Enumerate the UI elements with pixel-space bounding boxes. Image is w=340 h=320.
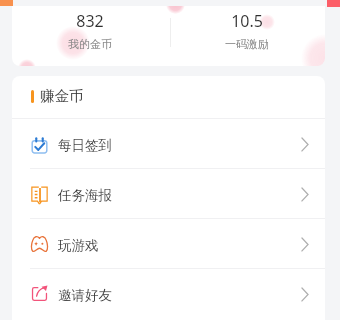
button[interactable]: 832 bbox=[12, 6, 168, 51]
staticText: 一码激励 bbox=[225, 37, 269, 51]
button[interactable]: 玩游戏 bbox=[12, 219, 325, 268]
staticText: 任务海报 bbox=[58, 187, 112, 204]
staticText: 10.5 bbox=[231, 10, 263, 32]
staticText: 832 bbox=[76, 10, 104, 32]
button[interactable]: 10.5 bbox=[168, 6, 325, 51]
staticText: 赚金币 bbox=[40, 87, 84, 105]
button[interactable]: 每日签到 bbox=[12, 119, 325, 168]
button[interactable]: 邀请好友 bbox=[12, 269, 325, 318]
staticText: 我的金币 bbox=[68, 37, 112, 51]
button[interactable]: 任务海报 bbox=[12, 169, 325, 218]
staticText: 玩游戏 bbox=[58, 237, 99, 254]
staticText: 邀请好友 bbox=[58, 287, 112, 304]
staticText: 每日签到 bbox=[58, 137, 112, 154]
